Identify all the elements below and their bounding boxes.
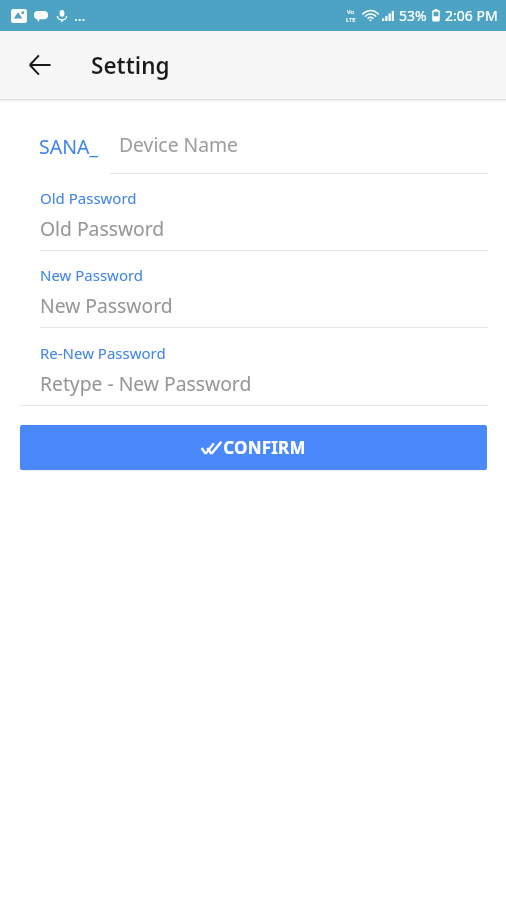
staticText: Vo [347, 8, 355, 16]
button[interactable]: Back [16, 41, 64, 89]
staticText: Old Password [40, 188, 137, 208]
staticText: ... [74, 6, 86, 25]
staticText: Old Password [40, 215, 165, 241]
button[interactable] [20, 182, 488, 251]
staticText: Retype - New Password [40, 370, 252, 396]
staticText: LTE [346, 16, 356, 24]
staticText: Re-New Password [40, 343, 166, 363]
button[interactable] [20, 337, 488, 406]
button[interactable] [20, 118, 488, 174]
staticText: New Password [40, 265, 144, 285]
staticText: SANA_ [39, 133, 99, 160]
staticText: 53% [399, 6, 427, 25]
button[interactable] [20, 259, 488, 328]
staticText: New Password [40, 292, 173, 318]
staticText: Device Name [119, 131, 238, 157]
staticText: Setting [91, 50, 170, 81]
staticText: CONFIRM [223, 436, 306, 459]
staticText: 2:06 PM [445, 6, 498, 25]
button[interactable]: CONFIRM [20, 425, 487, 470]
